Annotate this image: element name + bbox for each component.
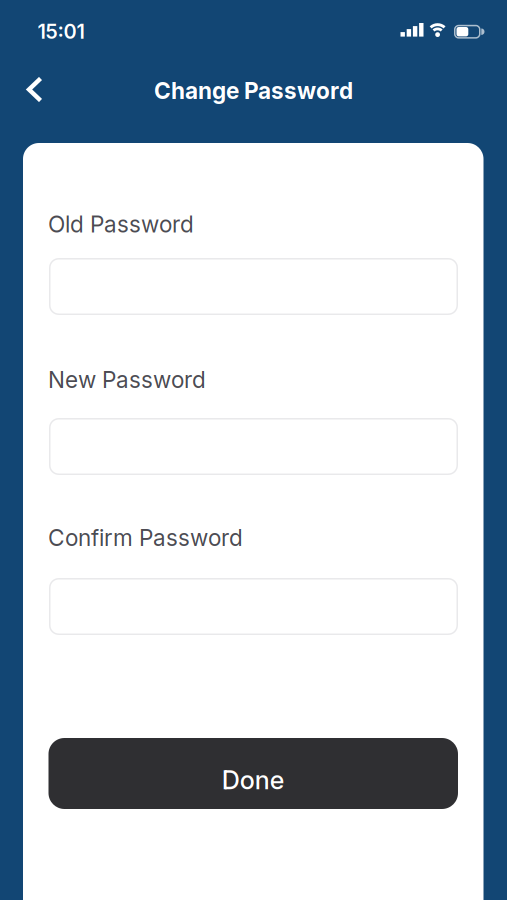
button[interactable]: Done <box>48 738 458 809</box>
button[interactable]: Back <box>18 69 50 109</box>
button[interactable]: New Password <box>49 418 458 475</box>
staticText: 15:01 <box>37 20 84 43</box>
staticText: New Password <box>48 366 206 393</box>
staticText: Change Password <box>154 77 353 104</box>
button[interactable]: Old Password <box>49 258 458 315</box>
staticText: Confirm Password <box>48 524 243 551</box>
staticText: Old Password <box>48 211 194 238</box>
staticText: Done <box>222 765 285 795</box>
button[interactable]: Confirm Password <box>49 578 458 635</box>
